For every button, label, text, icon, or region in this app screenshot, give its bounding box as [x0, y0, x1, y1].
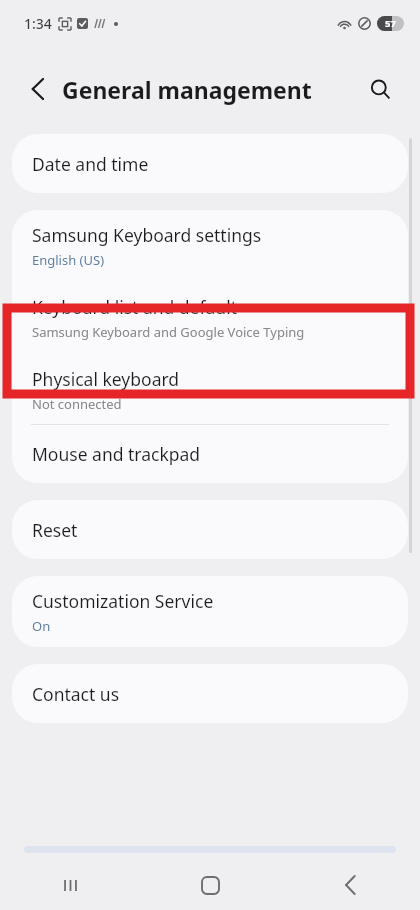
staticText: Customization Service: [32, 589, 214, 613]
staticText: Keyboard list and default: [32, 295, 237, 319]
button[interactable]: Search: [360, 69, 400, 109]
button[interactable]: Home: [140, 860, 280, 910]
button[interactable]: Date and time: [12, 134, 408, 193]
staticText: Physical keyboard: [32, 367, 180, 391]
staticText: General management: [62, 74, 312, 105]
staticText: Contact us: [32, 682, 120, 706]
staticText: 1:34: [24, 14, 52, 33]
button[interactable]: Keyboard list and default: [12, 281, 408, 355]
staticText: Reset: [32, 518, 78, 542]
staticText: English (US): [32, 251, 105, 269]
staticText: Samsung Keyboard and Google Voice Typing: [32, 323, 305, 341]
staticText: Not connected: [32, 395, 122, 413]
button[interactable]: Physical keyboard: [12, 355, 408, 424]
button[interactable]: Back: [280, 860, 420, 910]
button[interactable]: Recents: [0, 860, 140, 910]
staticText: 57: [385, 17, 396, 30]
button[interactable]: Back: [18, 69, 58, 109]
staticText: Mouse and trackpad: [32, 442, 201, 466]
staticText: Date and time: [32, 152, 149, 176]
button[interactable]: Reset: [12, 500, 408, 559]
button[interactable]: Samsung Keyboard settings: [12, 210, 408, 281]
staticText: Samsung Keyboard settings: [32, 223, 262, 247]
button[interactable]: Mouse and trackpad: [12, 425, 408, 483]
button[interactable]: Contact us: [12, 664, 408, 723]
button[interactable]: Customization Service: [12, 576, 408, 647]
staticText: On: [32, 617, 51, 635]
